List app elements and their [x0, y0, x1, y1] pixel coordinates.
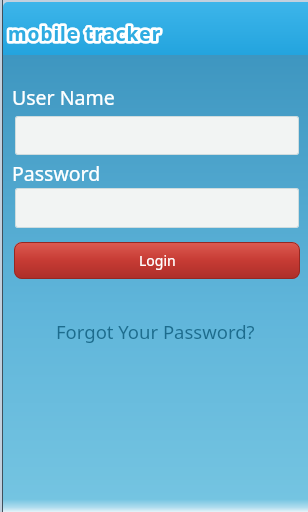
staticText: Login: [139, 251, 176, 270]
button[interactable]: [15, 116, 299, 155]
staticText: User Name: [12, 84, 115, 111]
staticText: mobile tracker: [8, 21, 162, 47]
button[interactable]: [15, 188, 299, 228]
button[interactable]: Forgot Your Password?: [56, 319, 255, 344]
staticText: Password: [12, 160, 101, 187]
staticText: mobile tracker: [8, 21, 162, 47]
button[interactable]: Login: [14, 242, 300, 279]
